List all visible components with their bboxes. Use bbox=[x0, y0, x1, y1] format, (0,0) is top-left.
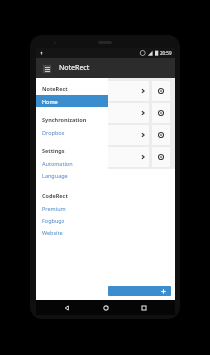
staticText: NoteRect bbox=[59, 63, 90, 73]
button[interactable]: unfitter sun... bbox=[39, 147, 149, 167]
button[interactable]: Add note bbox=[108, 286, 171, 296]
staticText: Website bbox=[42, 229, 63, 236]
staticText: Automation bbox=[42, 160, 73, 167]
button[interactable]: Home bbox=[99, 301, 113, 315]
button[interactable]: Open navigation drawer bbox=[41, 63, 52, 74]
button[interactable]: the deprect... bbox=[39, 125, 149, 145]
staticText: Language bbox=[42, 172, 68, 179]
button[interactable]: Recent apps bbox=[137, 301, 151, 315]
staticText: Home bbox=[42, 98, 58, 105]
button[interactable]: granite inst... bbox=[39, 81, 149, 101]
button[interactable]: Trawsent tin... bbox=[39, 103, 149, 123]
staticText: 20:59 bbox=[160, 50, 172, 56]
button[interactable]: Open navigation drawer bbox=[36, 58, 175, 78]
staticText: NoteRect bbox=[42, 85, 68, 92]
button[interactable]: Note options bbox=[152, 103, 170, 123]
staticText: Fogbugz bbox=[42, 217, 65, 224]
button[interactable]: Dropbox bbox=[36, 126, 108, 138]
button[interactable]: Back bbox=[60, 301, 74, 315]
staticText: Dropbox bbox=[42, 129, 65, 136]
button[interactable]: Automation bbox=[36, 157, 108, 169]
button[interactable]: Website bbox=[36, 226, 108, 238]
staticText: CodeRect bbox=[42, 192, 68, 199]
button[interactable]: Language bbox=[36, 169, 108, 181]
button[interactable]: Home bbox=[36, 95, 108, 107]
button[interactable]: Fogbugz bbox=[36, 214, 108, 226]
staticText: the deprect... bbox=[42, 132, 140, 138]
staticText: Settings bbox=[42, 147, 65, 154]
button[interactable]: Premium bbox=[36, 202, 108, 214]
staticText: Synchronization bbox=[42, 116, 87, 123]
button[interactable]: Note options bbox=[152, 81, 170, 101]
button[interactable]: Note options bbox=[152, 125, 170, 145]
staticText: Premium bbox=[42, 205, 66, 212]
button[interactable]: Note options bbox=[152, 147, 170, 167]
staticText: granite inst... bbox=[42, 88, 140, 94]
